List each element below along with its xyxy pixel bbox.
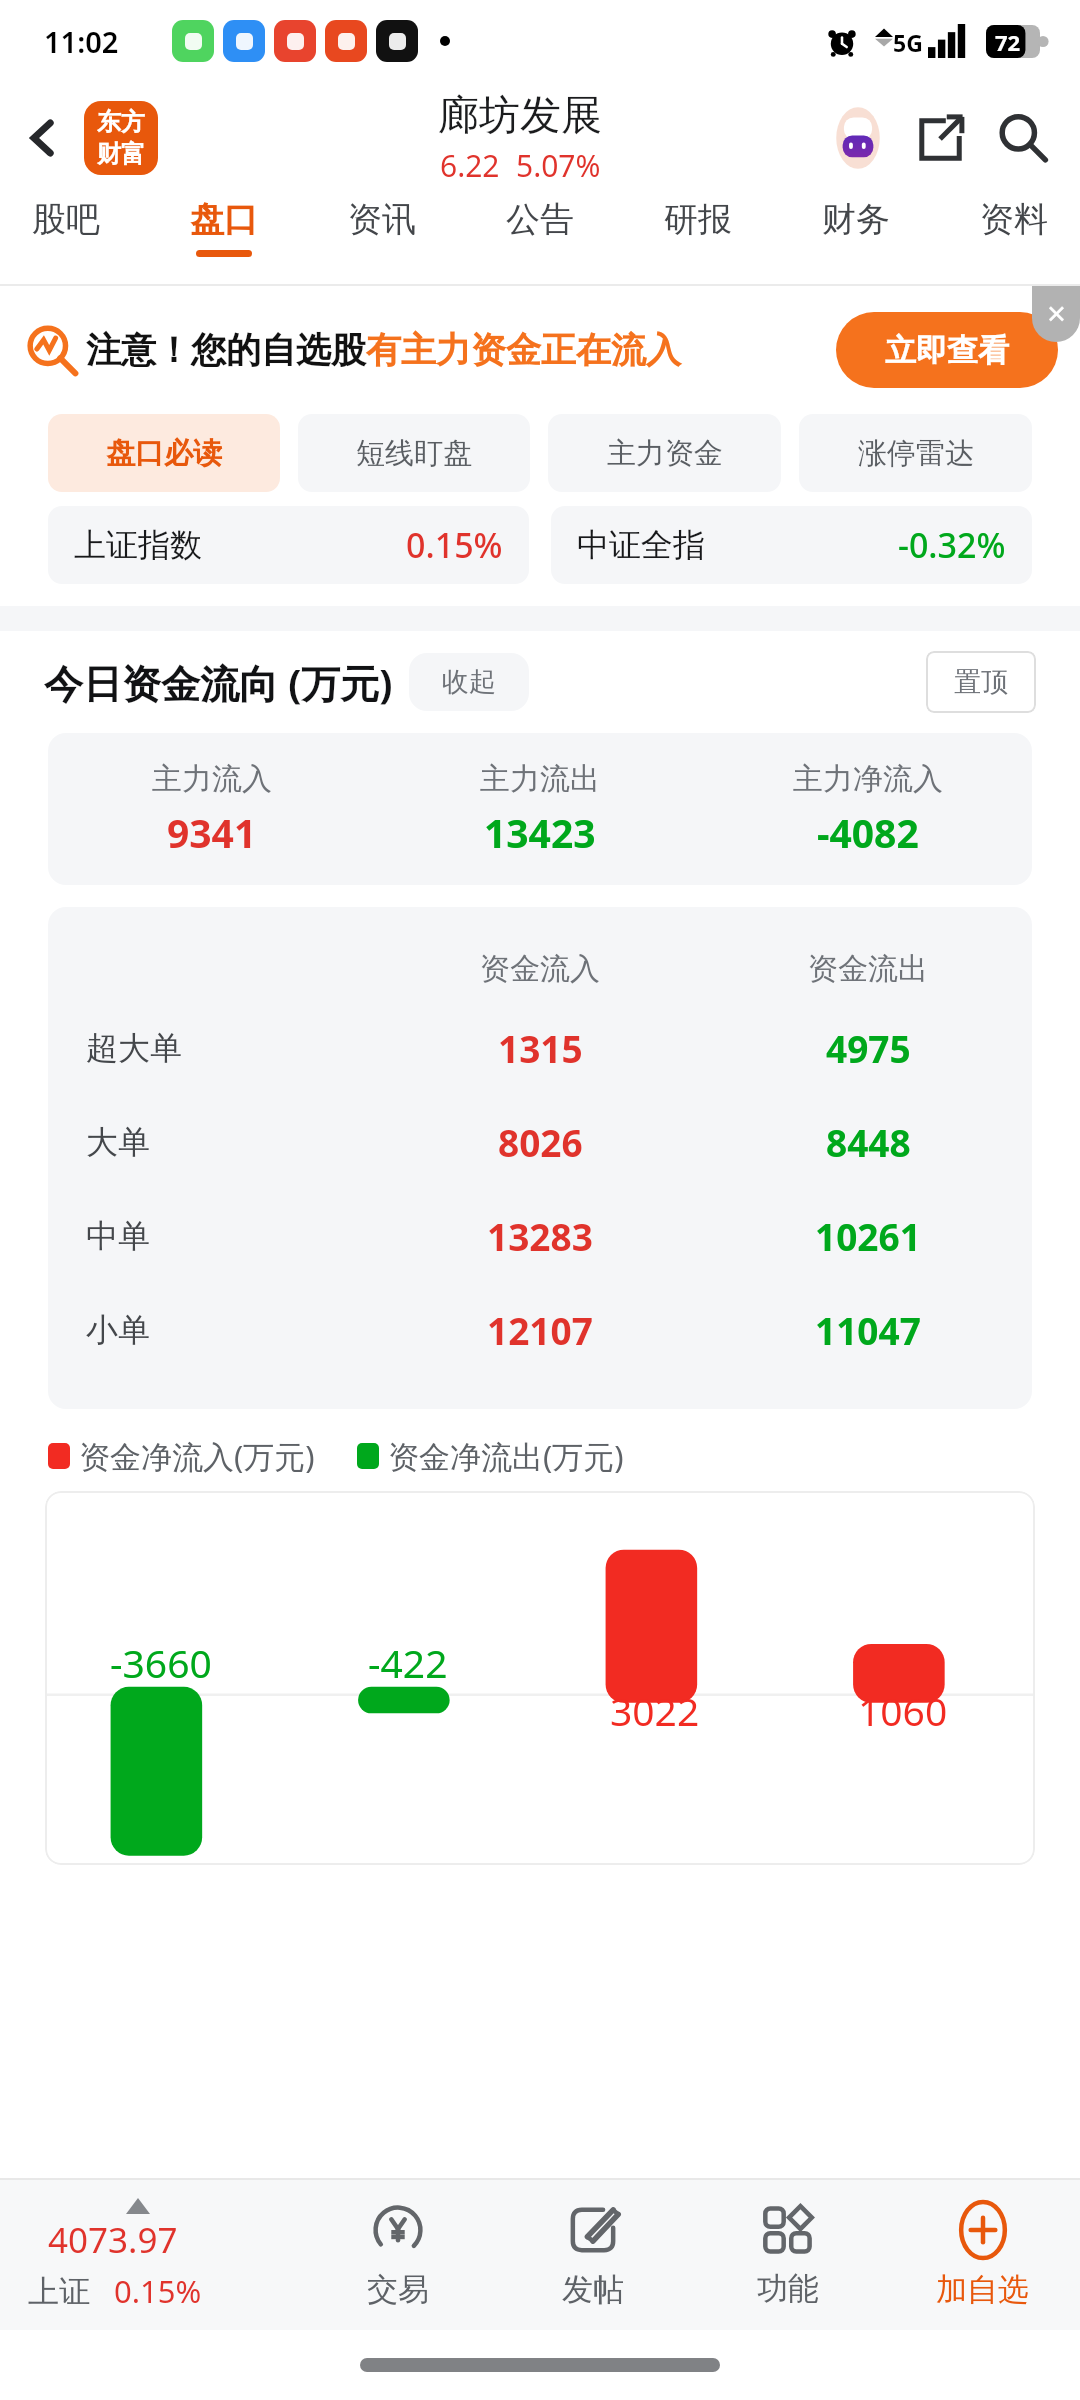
staticText: 资讯 <box>348 198 416 241</box>
staticText: 收起 <box>442 665 496 699</box>
staticText: 8026 <box>498 1117 583 1167</box>
staticText: 财务 <box>822 198 890 241</box>
staticText: 超大单 <box>86 1028 182 1068</box>
button[interactable]: 盘口 <box>180 194 268 261</box>
button[interactable]: 公告 <box>496 194 584 261</box>
staticText: 盘口必读 <box>106 435 222 472</box>
button[interactable]: 股吧 <box>22 194 110 261</box>
button[interactable]: 短线盯盘 <box>298 414 530 492</box>
staticText: ✕ <box>1046 300 1067 329</box>
staticText: 廊坊发展 <box>438 90 602 142</box>
button[interactable]: 盘口必读 <box>48 414 280 492</box>
button[interactable]: 资讯 <box>338 194 426 261</box>
staticText: 11047 <box>815 1305 921 1355</box>
staticText: 1060 <box>858 1684 948 1737</box>
button[interactable]: 置顶 <box>926 651 1036 713</box>
staticText: 小单 <box>86 1310 150 1350</box>
staticText: 主力流出 <box>480 760 600 798</box>
staticText: 主力净流入 <box>793 760 943 798</box>
staticText: 4975 <box>826 1023 911 1073</box>
staticText: 功能 <box>757 2269 819 2308</box>
button[interactable]: Search <box>988 103 1058 173</box>
button[interactable]: Share <box>906 103 976 173</box>
staticText: 9341 <box>167 806 257 859</box>
button[interactable]: Close <box>1032 286 1080 342</box>
staticText: 交易 <box>367 2270 429 2309</box>
staticText: 11:02 <box>44 22 119 61</box>
staticText: 中单 <box>86 1216 150 1256</box>
staticText: 公告 <box>506 198 574 241</box>
button[interactable]: 主力资金 <box>548 414 781 492</box>
staticText: 0.15% <box>114 2270 202 2312</box>
staticText: 72 <box>995 27 1021 57</box>
staticText: 1315 <box>498 1023 583 1073</box>
staticText: 发帖 <box>562 2270 624 2309</box>
staticText: -3660 <box>110 1636 212 1689</box>
staticText: 今日资金流向 (万元) <box>44 656 393 709</box>
staticText: 注意！您的自选股 <box>86 328 366 372</box>
staticText: 加自选 <box>936 2270 1029 2309</box>
button[interactable]: 东方 <box>84 101 158 175</box>
staticText: 资金流入 <box>480 950 600 988</box>
staticText: 短线盯盘 <box>356 435 472 472</box>
staticText: 5G <box>893 27 923 58</box>
staticText: 资金净流入(万元) <box>79 1435 315 1477</box>
button[interactable]: 上证指数 <box>48 506 529 584</box>
staticText: 股吧 <box>32 198 100 241</box>
staticText: 10261 <box>815 1211 921 1261</box>
staticText: 13283 <box>487 1211 593 1261</box>
button[interactable]: 涨停雷达 <box>799 414 1032 492</box>
staticText: 大单 <box>86 1122 150 1162</box>
staticText: -422 <box>368 1636 448 1689</box>
staticText: 置顶 <box>954 665 1008 699</box>
button[interactable]: 4073.97 <box>0 2180 300 2330</box>
staticText: -4082 <box>817 806 919 859</box>
button[interactable]: 财务 <box>812 194 900 261</box>
button[interactable]: 发帖 <box>495 2180 690 2330</box>
staticText: 资金流出 <box>808 950 928 988</box>
staticText: 上证指数 <box>74 525 202 565</box>
button[interactable]: Assistant <box>820 100 896 176</box>
button[interactable]: 收起 <box>409 653 529 711</box>
staticText: 涨停雷达 <box>858 435 974 472</box>
staticText: 财富 <box>97 139 145 169</box>
staticText: 12107 <box>487 1305 593 1355</box>
button[interactable]: -3660 <box>45 1491 1035 1865</box>
button[interactable]: 资料 <box>970 194 1058 261</box>
staticText: 立即查看 <box>885 331 1009 370</box>
button[interactable]: 交易 <box>300 2180 495 2330</box>
staticText: 资金净流出(万元) <box>388 1435 624 1477</box>
staticText: 13423 <box>484 806 596 859</box>
button[interactable]: Back <box>14 109 72 167</box>
button[interactable]: 主力流入 <box>48 733 1032 885</box>
button[interactable]: 中证全指 <box>551 506 1032 584</box>
staticText: 4073.97 <box>48 2216 178 2264</box>
button[interactable]: 研报 <box>654 194 742 261</box>
staticText: 有主力资金正在流入 <box>366 328 681 372</box>
staticText: 主力流入 <box>152 760 272 798</box>
staticText: 资料 <box>980 198 1048 241</box>
staticText: 上证 <box>28 2272 90 2311</box>
staticText: 8448 <box>826 1117 911 1167</box>
staticText: 东方 <box>97 107 145 137</box>
staticText: 中证全指 <box>577 525 705 565</box>
staticText: 5.07% <box>516 145 601 186</box>
staticText: 盘口 <box>190 198 258 241</box>
staticText: 0.15% <box>406 522 503 568</box>
button[interactable]: 加自选 <box>885 2180 1080 2330</box>
button[interactable]: 功能 <box>690 2180 885 2330</box>
button[interactable]: 立即查看 <box>836 312 1058 388</box>
button[interactable]: 资金流入 <box>48 907 1032 1409</box>
staticText: -0.32% <box>898 522 1006 568</box>
staticText: 主力资金 <box>607 435 723 472</box>
staticText: 研报 <box>664 198 732 241</box>
staticText: 3022 <box>610 1684 700 1737</box>
staticText: 6.22 <box>440 145 500 186</box>
